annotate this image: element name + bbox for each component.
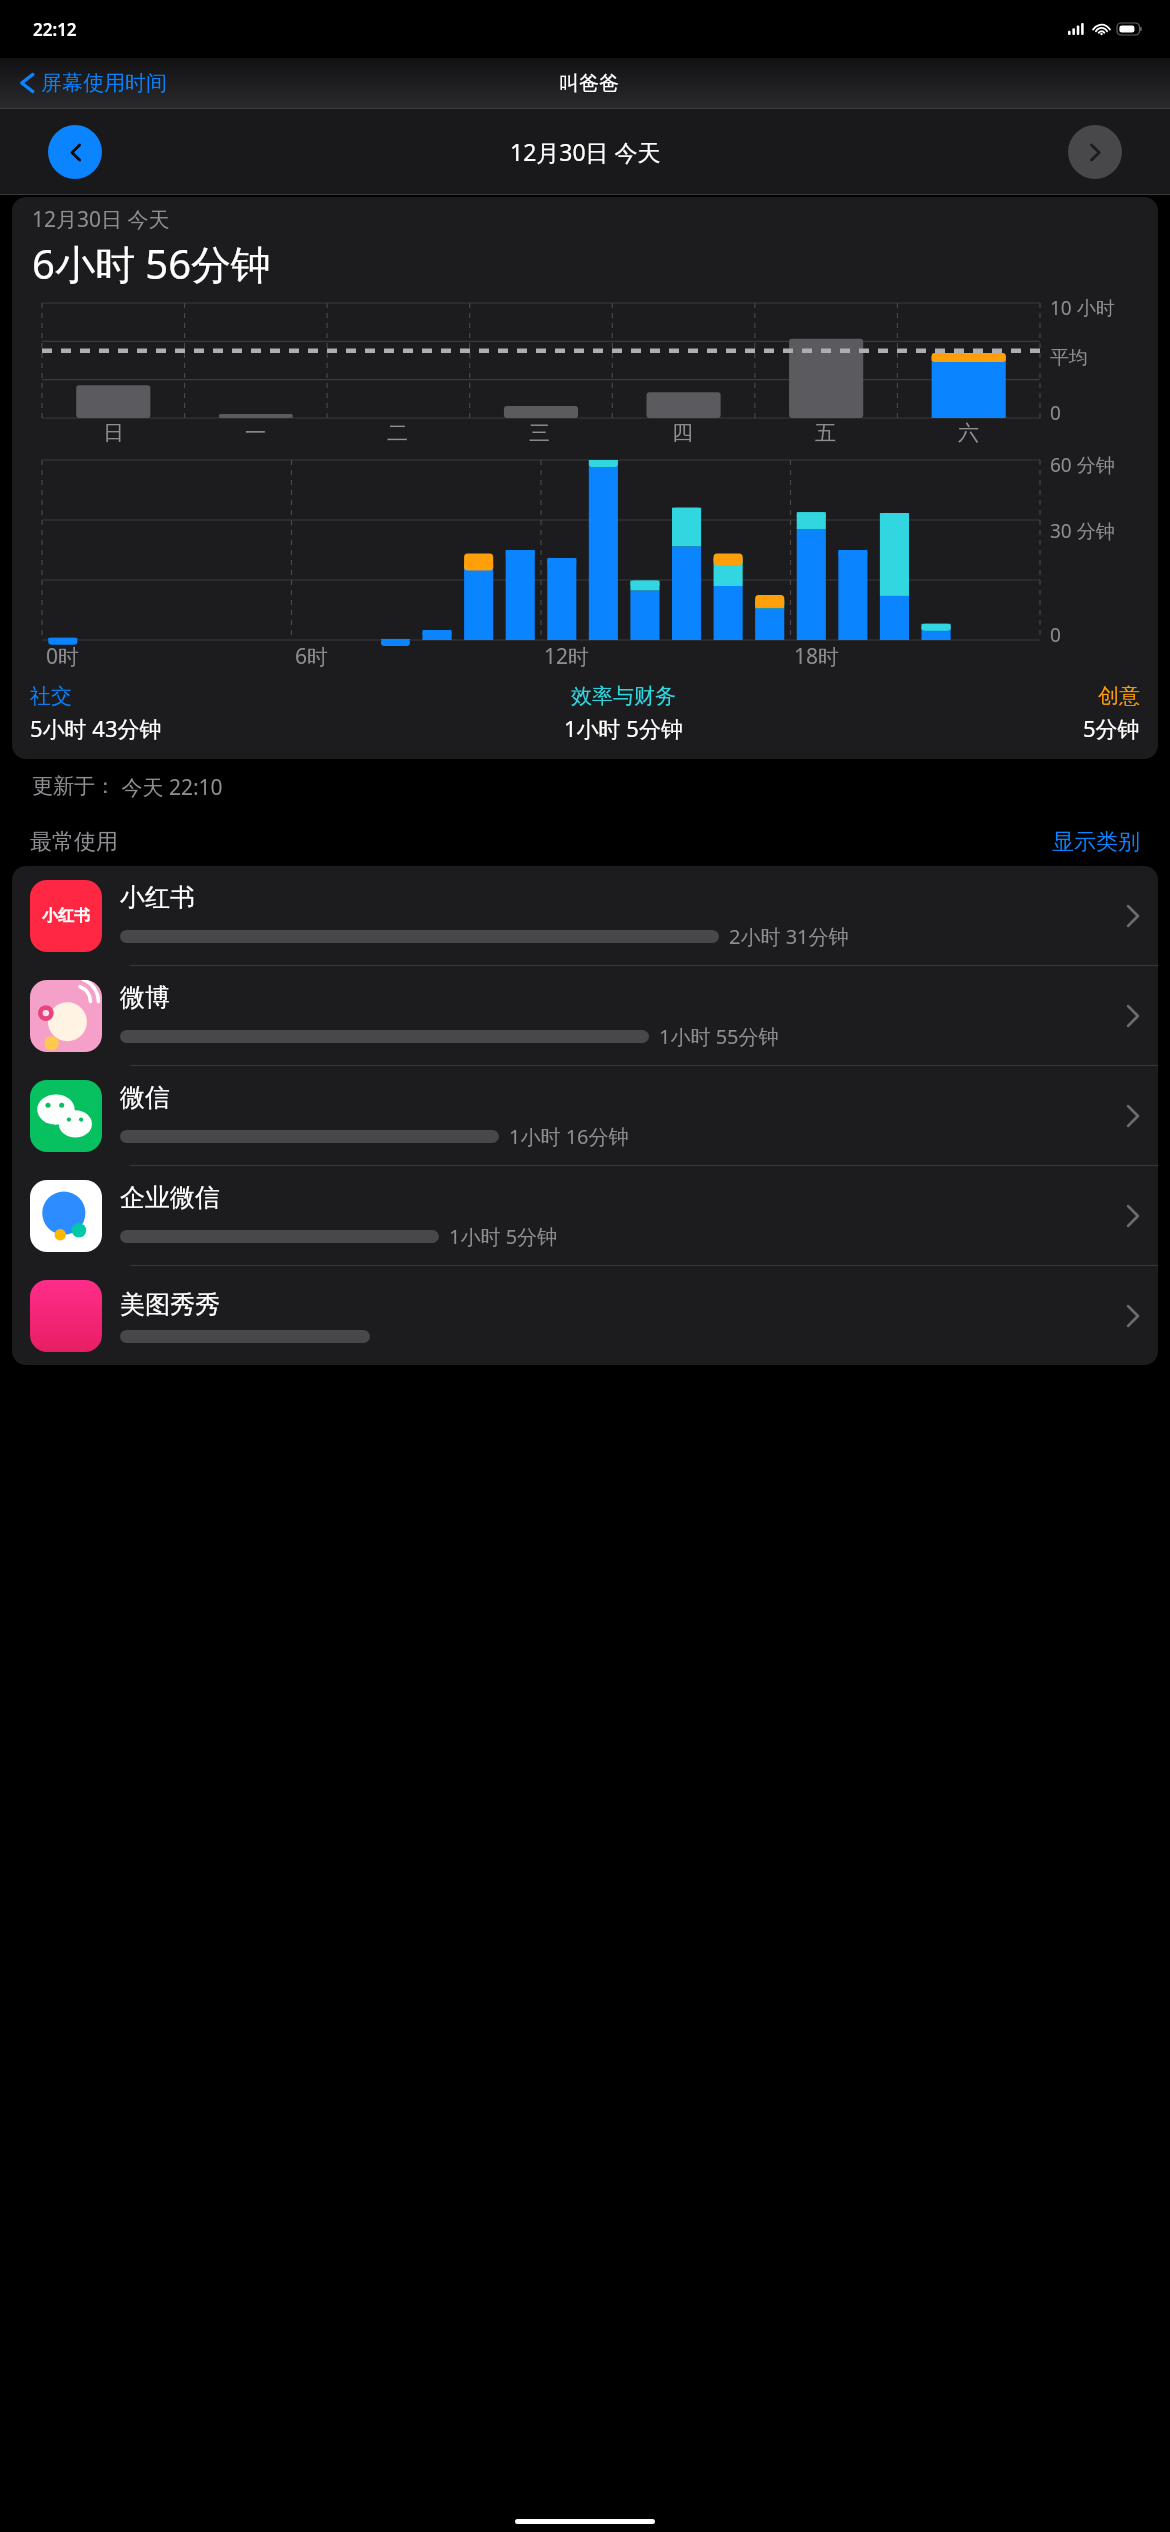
staticText: 五 xyxy=(815,420,836,446)
button[interactable]: Previous day xyxy=(48,125,102,179)
staticText: 显示类别 xyxy=(1052,828,1140,856)
staticText: 6时 xyxy=(295,642,329,671)
staticText: 60 分钟 xyxy=(1050,452,1115,478)
staticText: 6小时 56分钟 xyxy=(32,236,272,291)
button[interactable]: 屏幕使用时间 xyxy=(14,66,173,100)
staticText: 1小时 55分钟 xyxy=(659,1023,779,1050)
staticText: 二 xyxy=(387,420,408,446)
staticText: 18时 xyxy=(794,642,840,671)
staticText: 小红书 xyxy=(120,882,195,913)
staticText: 30 分钟 xyxy=(1050,518,1115,544)
staticText: 12月30日 今天 xyxy=(510,136,661,167)
staticText: 社交 xyxy=(30,683,72,709)
button[interactable]: 企业微信 xyxy=(12,1166,1158,1265)
staticText: 今天 22:10 xyxy=(116,773,223,802)
staticText: 2小时 31分钟 xyxy=(729,923,849,950)
staticText: 1小时 5分钟 xyxy=(564,713,683,743)
staticText: 小红书 xyxy=(42,906,90,926)
staticText: 12月30日 今天 xyxy=(32,205,170,234)
button[interactable]: 小红书 xyxy=(12,866,1158,965)
staticText: 六 xyxy=(958,420,979,446)
staticText: 更新于： xyxy=(32,773,116,799)
staticText: 平均 xyxy=(1050,346,1088,370)
button[interactable]: Next day xyxy=(1068,125,1122,179)
staticText: 5小时 43分钟 xyxy=(30,713,162,743)
staticText: 一 xyxy=(245,420,266,446)
staticText: 美图秀秀 xyxy=(120,1289,220,1320)
staticText: 0 xyxy=(1050,622,1061,648)
staticText: 0时 xyxy=(46,642,80,671)
staticText: 0 xyxy=(1050,400,1061,426)
staticText: 1小时 5分钟 xyxy=(449,1223,558,1250)
button[interactable]: 美图秀秀 xyxy=(12,1266,1158,1365)
staticText: 10 小时 xyxy=(1050,295,1115,321)
button[interactable]: 微信 xyxy=(12,1066,1158,1165)
staticText: 三 xyxy=(529,420,550,446)
staticText: 最常使用 xyxy=(30,828,118,856)
staticText: 四 xyxy=(672,420,693,446)
staticText: 微博 xyxy=(120,982,170,1013)
staticText: 屏幕使用时间 xyxy=(41,70,167,96)
staticText: 5分钟 xyxy=(1083,713,1140,743)
staticText: 12时 xyxy=(544,642,590,671)
button[interactable]: 显示类别 xyxy=(1052,828,1140,856)
staticText: 22:12 xyxy=(33,18,77,41)
staticText: 日 xyxy=(103,420,124,446)
staticText: 叫爸爸 xyxy=(559,71,619,96)
staticText: 1小时 16分钟 xyxy=(509,1123,629,1150)
staticText: 效率与财务 xyxy=(571,683,676,709)
staticText: 微信 xyxy=(120,1082,170,1113)
staticText: 企业微信 xyxy=(120,1182,220,1213)
staticText: 创意 xyxy=(1098,683,1140,709)
button[interactable]: 微博 xyxy=(12,966,1158,1065)
